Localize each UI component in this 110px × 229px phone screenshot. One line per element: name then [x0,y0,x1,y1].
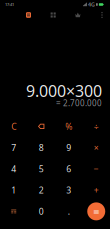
button[interactable]: ÷ [82,116,110,137]
staticText: C [11,120,16,132]
staticText: 5 [39,163,44,175]
staticText: . [68,205,70,217]
button[interactable]: 1 [0,179,27,201]
button[interactable]: Premium [71,9,84,21]
button[interactable]: . [55,201,82,222]
button[interactable]: 3 [55,179,82,201]
button[interactable]: × [82,137,110,158]
staticText: 7 [11,142,16,153]
button[interactable]: C [0,116,27,137]
button[interactable]: 9 [55,137,82,158]
staticText: = [93,204,99,218]
staticText: 17:41 [5,2,14,7]
staticText: 4G [88,1,95,8]
staticText: 6 [66,163,71,175]
staticText: 3 [66,184,71,196]
button[interactable]: Backspace [27,116,55,137]
staticText: 9 [66,142,71,153]
staticText: − [94,163,99,175]
button[interactable]: Unit converter [0,201,27,222]
button[interactable]: 2 [27,179,55,201]
button[interactable]: 8 [27,137,55,158]
staticText: 8 [39,142,44,153]
staticText: = 2.700.000 [56,98,102,108]
staticText: × [94,142,99,153]
button[interactable]: = [82,201,110,222]
button[interactable]: Unit converter [47,9,60,21]
button[interactable]: 7 [0,137,27,158]
button[interactable]: 0 [27,201,55,222]
staticText: + [94,184,99,196]
button[interactable]: 4 [0,158,27,179]
staticText: 2 [39,184,44,196]
staticText: 4 [11,163,16,175]
button[interactable]: Calculator [22,9,35,21]
staticText: 0 [39,205,44,217]
button[interactable]: % [55,116,82,137]
staticText: 1 [11,184,16,196]
button[interactable]: 6 [55,158,82,179]
staticText: ÷ [94,120,99,132]
button[interactable]: + [82,179,110,201]
button[interactable]: − [82,158,110,179]
staticText: 9.000×300 [26,80,102,101]
staticText: % [65,120,72,132]
button[interactable]: 5 [27,158,55,179]
button[interactable]: More options [96,9,108,21]
